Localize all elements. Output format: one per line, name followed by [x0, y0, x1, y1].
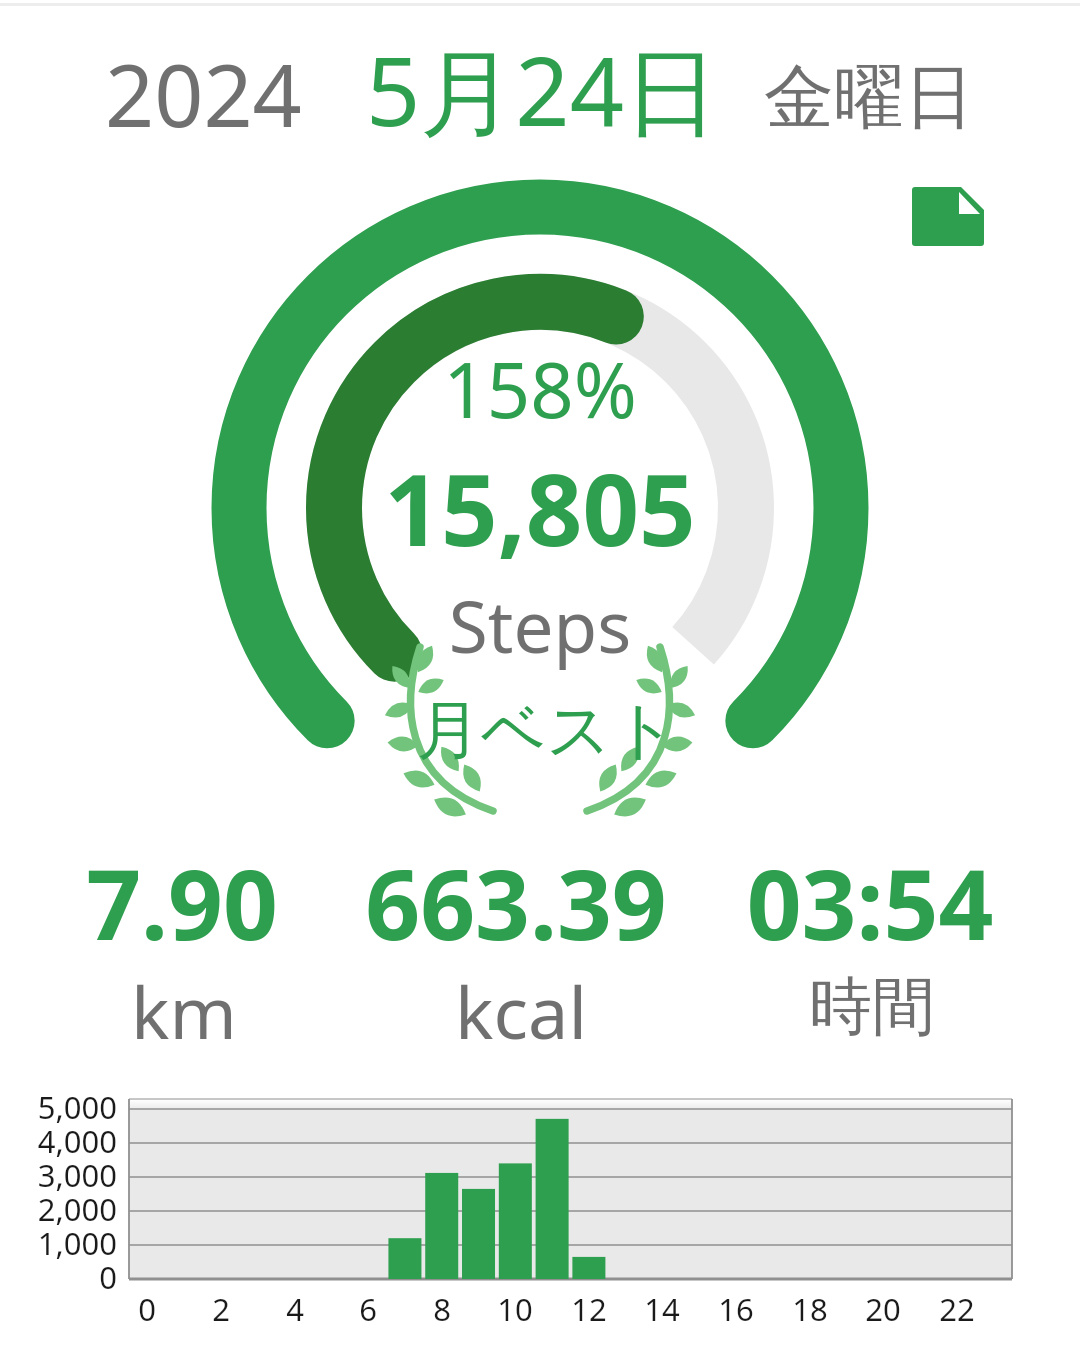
staticText: 4,000	[0, 1120, 117, 1162]
staticText: 5月24日	[366, 24, 720, 154]
button[interactable]: Memo	[900, 175, 996, 257]
button[interactable]: 03:54	[700, 837, 1040, 1052]
staticText: 158%	[0, 337, 1080, 441]
staticText: 12	[539, 1288, 639, 1330]
staticText: 時間	[702, 967, 1042, 1046]
staticText: 15,805	[0, 440, 1080, 575]
button[interactable]: Daily step goal progress	[205, 173, 875, 843]
staticText: 14	[612, 1288, 712, 1330]
staticText: km	[14, 962, 354, 1060]
staticText: 22	[907, 1288, 1007, 1330]
staticText: 3,000	[0, 1154, 117, 1196]
staticText: 03:54	[700, 837, 1040, 968]
staticText: 1,000	[0, 1222, 117, 1264]
staticText: 10	[465, 1288, 565, 1330]
staticText: 2024	[105, 35, 302, 152]
button[interactable]: 7.90	[12, 837, 352, 1052]
staticText: Steps	[0, 577, 1080, 674]
staticText: 8	[392, 1288, 492, 1330]
button[interactable]: 2024	[90, 20, 990, 150]
staticText: 16	[686, 1288, 786, 1330]
staticText: 0	[0, 1256, 117, 1298]
staticText: 月ベスト	[7, 690, 1080, 771]
staticText: 5,000	[0, 1086, 117, 1128]
staticText: 18	[760, 1288, 860, 1330]
staticText: 2,000	[0, 1188, 117, 1230]
button[interactable]: 663.39	[346, 837, 686, 1052]
staticText: 2	[171, 1288, 271, 1330]
staticText: 663.39	[346, 837, 686, 968]
staticText: 金曜日	[764, 54, 974, 142]
staticText: kcal	[351, 962, 691, 1060]
button[interactable]: Hourly steps chart	[129, 1099, 1012, 1279]
staticText: 20	[833, 1288, 933, 1330]
staticText: 7.90	[12, 837, 352, 968]
staticText: 0	[97, 1288, 197, 1330]
staticText: 6	[318, 1288, 418, 1330]
staticText: 4	[245, 1288, 345, 1330]
